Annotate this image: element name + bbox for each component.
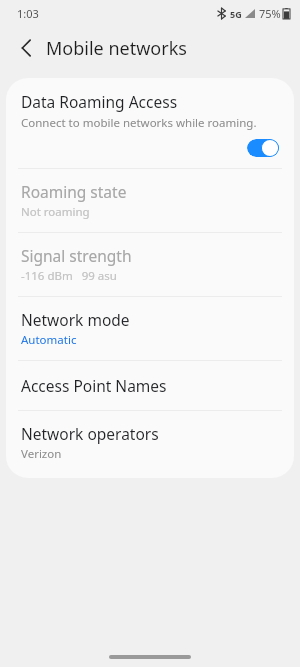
staticText: Roaming state — [21, 181, 127, 202]
button[interactable]: Network operators — [6, 411, 294, 478]
staticText: 1:03 — [17, 6, 39, 21]
staticText: Not roaming — [21, 204, 90, 220]
staticText: Network operators — [21, 423, 159, 444]
staticText: Access Point Names — [21, 375, 167, 396]
staticText: -116 dBm 99 asu — [21, 268, 117, 284]
button[interactable]: Data roaming toggle — [247, 139, 279, 157]
button[interactable]: Roaming state — [6, 169, 294, 232]
button[interactable]: Data Roaming Access — [6, 78, 294, 168]
button[interactable]: Access Point Names — [6, 361, 294, 410]
staticText: Signal strength — [21, 245, 132, 266]
staticText: Connect to mobile networks while roaming… — [21, 115, 257, 131]
staticText: 75% — [259, 6, 281, 21]
button[interactable]: Network mode — [6, 297, 294, 360]
staticText: 5G — [230, 8, 242, 20]
button[interactable]: Back — [10, 32, 42, 64]
staticText: Network mode — [21, 309, 130, 330]
staticText: Mobile networks — [46, 36, 187, 61]
staticText: Data Roaming Access — [21, 91, 178, 112]
button[interactable]: Signal strength — [6, 233, 294, 296]
staticText: Verizon — [21, 446, 62, 462]
staticText: Automatic — [21, 332, 77, 348]
